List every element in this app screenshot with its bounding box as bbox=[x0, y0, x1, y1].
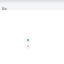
button[interactable]: More bbox=[25, 43, 30, 48]
staticText: Go bbox=[2, 6, 7, 11]
button[interactable]: Add bbox=[25, 37, 30, 42]
